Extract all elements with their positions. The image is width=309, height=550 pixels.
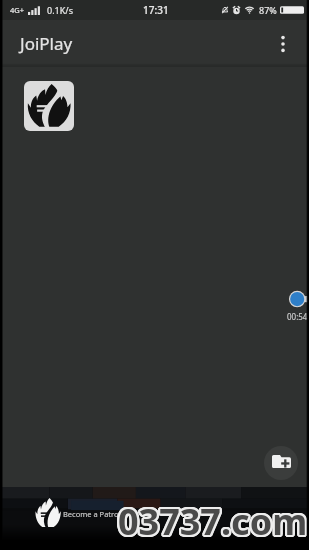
- staticText: 03737.com: [120, 498, 309, 547]
- staticText: 03737.com: [120, 496, 309, 545]
- staticText: 03737.com: [116, 498, 306, 547]
- staticText: 87%: [259, 4, 277, 16]
- staticText: 03737.com: [116, 496, 306, 545]
- button[interactable]: Add folder: [264, 446, 298, 480]
- staticText: 03737.com: [118, 495, 308, 544]
- button[interactable]: Screen recorder: [286, 288, 308, 310]
- staticText: 00:54: [287, 311, 308, 322]
- staticText: 03737.com: [118, 496, 308, 545]
- staticText: 03737.com: [117, 497, 307, 546]
- staticText: 03737.com: [118, 497, 308, 546]
- staticText: 03737.com: [116, 497, 306, 546]
- button[interactable]: [24, 81, 74, 131]
- staticText: 03737.com: [117, 499, 307, 548]
- staticText: 17:31: [143, 3, 169, 17]
- staticText: 03737.com: [119, 498, 309, 547]
- staticText: 03737.com: [119, 496, 309, 545]
- staticText: 03737.com: [117, 495, 307, 544]
- staticText: JoiPlay: [20, 32, 73, 55]
- staticText: 03737.com: [118, 498, 308, 547]
- staticText: 03737.com: [120, 497, 309, 546]
- staticText: 03737.com: [119, 495, 309, 544]
- staticText: Become a Patron!: [63, 509, 126, 519]
- staticText: 0.1K/s: [47, 4, 73, 16]
- staticText: 03737.com: [119, 497, 309, 546]
- staticText: 03737.com: [117, 496, 307, 545]
- staticText: 03737.com: [117, 498, 307, 547]
- staticText: 03737.com: [118, 499, 308, 548]
- button[interactable]: More options: [265, 26, 301, 62]
- staticText: 4G+: [10, 5, 25, 15]
- staticText: 03737.com: [119, 499, 309, 548]
